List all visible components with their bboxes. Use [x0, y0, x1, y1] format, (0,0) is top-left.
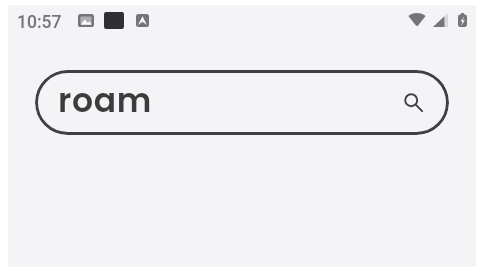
staticText: roam: [58, 77, 153, 123]
button[interactable]: Search: [403, 90, 429, 116]
staticText: 10:57: [17, 12, 62, 33]
button[interactable]: roam: [35, 70, 449, 135]
